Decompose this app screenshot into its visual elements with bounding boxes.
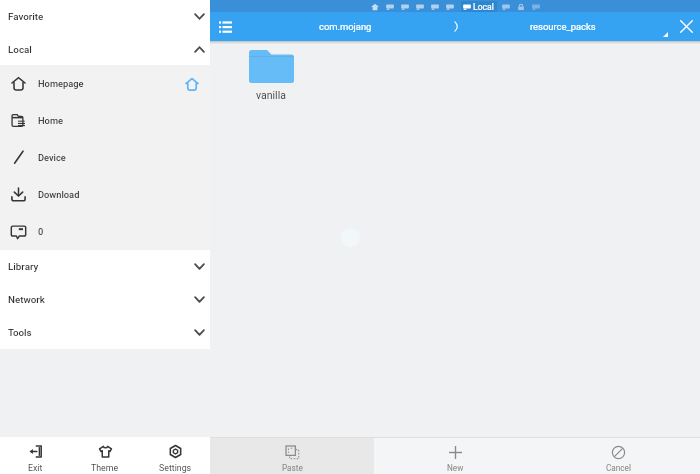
staticText: resource_packs — [530, 21, 596, 32]
button[interactable]: Network — [0, 283, 210, 316]
staticText: Favorite — [8, 11, 44, 22]
staticText: 0 — [38, 226, 44, 237]
button[interactable]: Paste — [210, 438, 374, 474]
staticText: Theme — [91, 463, 119, 473]
button[interactable]: Menu — [210, 12, 240, 41]
staticText: Local — [8, 44, 32, 55]
button[interactable]: Local — [0, 33, 210, 65]
staticText: Local — [473, 2, 494, 12]
staticText: com.mojang — [319, 21, 372, 32]
staticText: Device — [38, 152, 66, 163]
staticText: New — [447, 463, 464, 473]
button[interactable]: Settings — [140, 437, 210, 474]
staticText: Paste — [282, 463, 303, 473]
button[interactable]: Tools — [0, 316, 210, 349]
button[interactable]: Homepage — [0, 65, 210, 102]
button[interactable]: Exit — [0, 437, 70, 474]
staticText: Homepage — [38, 78, 84, 89]
button[interactable]: Cancel — [537, 438, 700, 474]
button[interactable]: Library — [0, 250, 210, 283]
staticText: vanilla — [256, 89, 286, 101]
button[interactable]: Device — [0, 139, 210, 176]
button[interactable]: New — [374, 438, 537, 474]
button[interactable]: Close — [672, 12, 700, 41]
staticText: Settings — [159, 463, 192, 473]
staticText: Cancel — [606, 463, 631, 473]
button[interactable]: Download — [0, 176, 210, 213]
staticText: Network — [8, 294, 45, 305]
staticText: Home — [38, 115, 63, 126]
staticText: Exit — [28, 463, 43, 473]
button[interactable]: vanilla — [241, 50, 301, 101]
button[interactable]: com.mojang — [319, 12, 372, 41]
staticText: Download — [38, 189, 80, 200]
button[interactable]: Home — [0, 102, 210, 139]
staticText: Library — [8, 261, 39, 272]
button[interactable]: 0 — [0, 213, 210, 250]
button[interactable]: Favorite — [0, 0, 210, 33]
staticText: Tools — [8, 327, 32, 338]
button[interactable]: Theme — [70, 437, 140, 474]
button[interactable]: resource_packs — [530, 12, 596, 41]
